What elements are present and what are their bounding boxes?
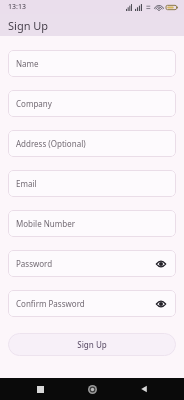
staticText: Sign Up bbox=[8, 18, 49, 33]
staticText: Email bbox=[16, 178, 168, 189]
button[interactable]: Email bbox=[8, 170, 176, 197]
button[interactable]: Home bbox=[66, 378, 118, 400]
button[interactable]: Recent apps bbox=[14, 378, 66, 400]
button[interactable]: Toggle password visibility bbox=[154, 297, 168, 311]
button[interactable]: Sign Up bbox=[8, 333, 176, 356]
button[interactable]: Mobile Number bbox=[8, 210, 176, 237]
button[interactable]: Back bbox=[118, 378, 170, 400]
staticText: 13:13 bbox=[8, 2, 26, 12]
button[interactable]: Toggle password visibility bbox=[154, 257, 168, 271]
button[interactable]: Company bbox=[8, 90, 176, 117]
button[interactable]: Confirm Password bbox=[8, 290, 176, 317]
staticText: Company bbox=[16, 98, 168, 109]
staticText: Mobile Number bbox=[16, 218, 168, 229]
button[interactable]: Name bbox=[8, 50, 176, 77]
staticText: Sign Up bbox=[77, 339, 107, 350]
staticText: Name bbox=[16, 58, 168, 69]
staticText: Confirm Password bbox=[16, 298, 154, 309]
button[interactable]: Password bbox=[8, 250, 176, 277]
staticText: Address (Optional) bbox=[16, 138, 168, 149]
staticText: Password bbox=[16, 258, 154, 269]
button[interactable]: Address (Optional) bbox=[8, 130, 176, 157]
